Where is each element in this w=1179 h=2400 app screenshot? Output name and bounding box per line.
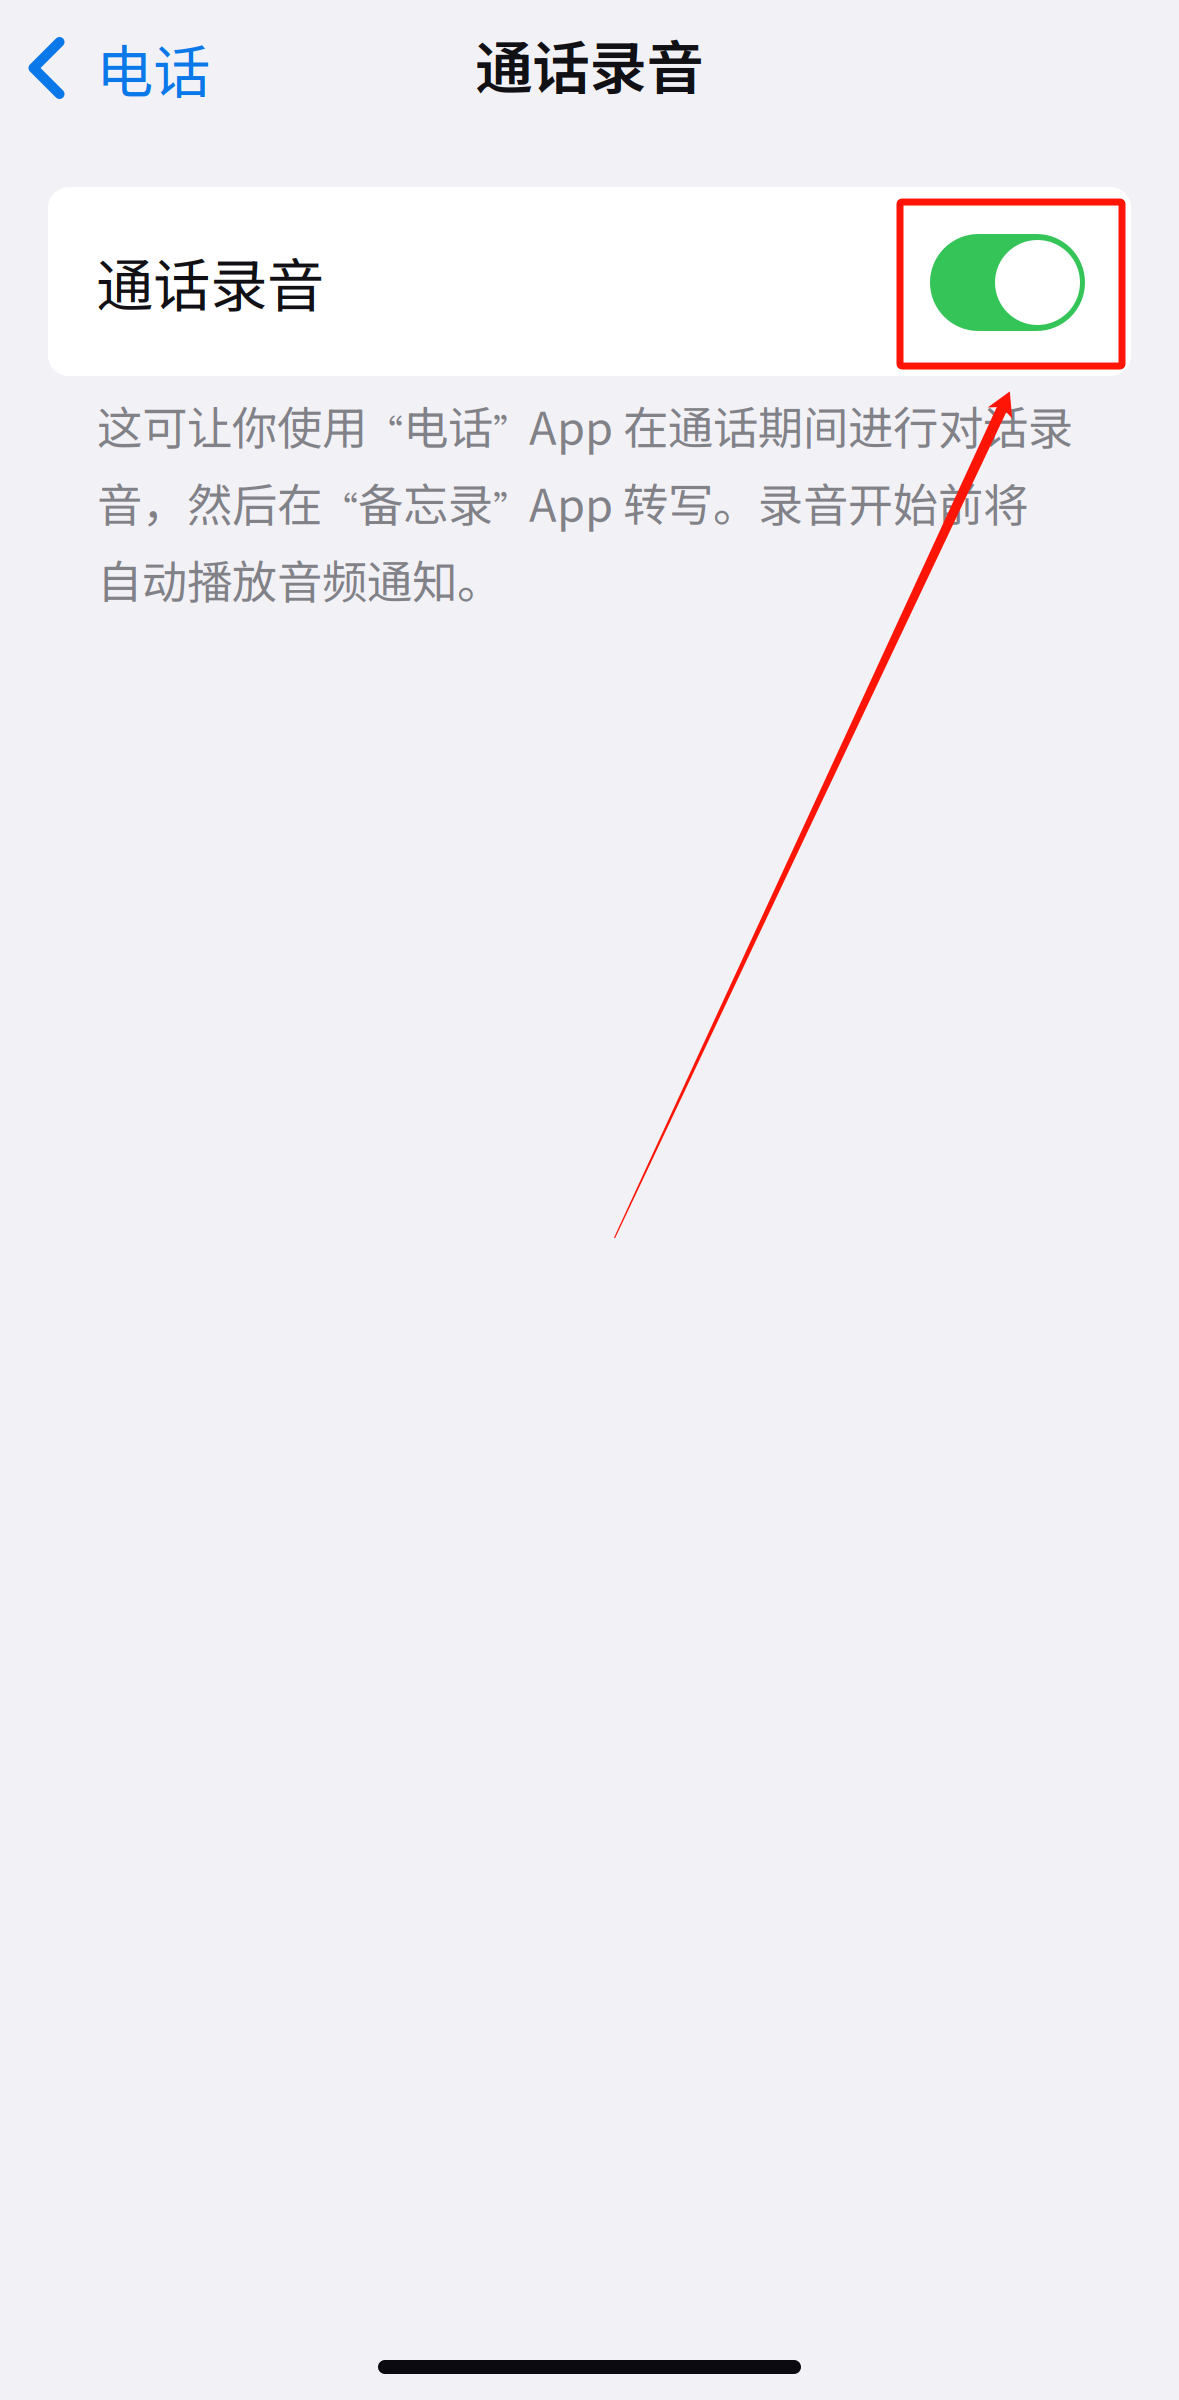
staticText: 这可让你使用“电话”App 在通话期间进行对话录 音，然后在“备忘录”App 转…: [97, 393, 1073, 611]
button[interactable]: 通话录音: [48, 187, 1131, 376]
staticText: 通话录音: [96, 240, 324, 323]
staticText: 电话: [96, 26, 210, 109]
staticText: 通话录音: [475, 22, 703, 105]
button[interactable]: 返回 电话: [0, 8, 234, 128]
